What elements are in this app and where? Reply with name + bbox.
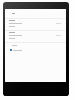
button[interactable] <box>5 19 66 30</box>
button[interactable] <box>5 31 66 42</box>
button[interactable] <box>5 43 66 51</box>
button[interactable] <box>5 9 66 18</box>
